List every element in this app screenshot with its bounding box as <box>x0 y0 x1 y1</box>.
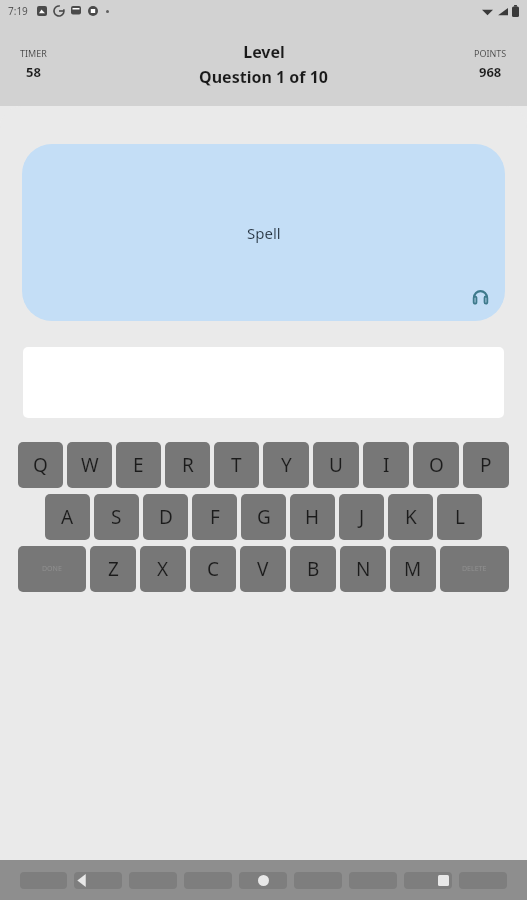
staticText: Y <box>281 452 292 478</box>
staticText: H <box>305 504 320 530</box>
staticText: B <box>307 556 320 582</box>
button[interactable]: DONE <box>18 546 86 592</box>
staticText: O <box>429 452 444 478</box>
button[interactable]: V <box>240 546 286 592</box>
staticText: S <box>111 504 122 530</box>
staticText: C <box>207 556 220 582</box>
button[interactable]: Y <box>263 442 309 488</box>
staticText: A <box>61 504 74 530</box>
button[interactable]: H <box>290 494 335 540</box>
button[interactable]: S <box>94 494 139 540</box>
staticText: U <box>329 452 343 478</box>
staticText: V <box>257 556 269 582</box>
button[interactable]: DELETE <box>440 546 509 592</box>
staticText: T <box>231 452 242 478</box>
button[interactable]: Home <box>175 875 351 886</box>
staticText: DONE <box>42 564 62 574</box>
button[interactable]: C <box>190 546 236 592</box>
button[interactable]: Q <box>18 442 63 488</box>
button[interactable]: G <box>241 494 286 540</box>
button[interactable]: X <box>140 546 186 592</box>
button[interactable]: M <box>390 546 436 592</box>
staticText: Spell <box>247 223 281 243</box>
staticText: TIMER <box>20 47 47 59</box>
button[interactable]: Spell <box>22 144 505 321</box>
button[interactable]: Back <box>0 874 175 887</box>
staticText: J <box>359 504 365 530</box>
button[interactable]: O <box>413 442 459 488</box>
staticText: POINTS <box>474 47 507 59</box>
button[interactable]: B <box>290 546 336 592</box>
staticText: 7:19 <box>8 4 28 18</box>
staticText: 58 <box>26 63 41 81</box>
staticText: L <box>455 504 465 530</box>
staticText: Level <box>243 41 285 63</box>
staticText: D <box>159 504 173 530</box>
staticText: N <box>356 556 371 582</box>
staticText: DELETE <box>462 564 487 574</box>
staticText: 968 <box>479 63 502 81</box>
staticText: M <box>404 556 422 582</box>
staticText: G <box>257 504 271 530</box>
staticText: R <box>182 452 194 478</box>
staticText: F <box>210 504 220 530</box>
staticText: Q <box>33 452 48 478</box>
button[interactable]: U <box>313 442 359 488</box>
button[interactable]: Recent apps <box>351 875 527 886</box>
staticText: P <box>480 452 492 478</box>
button[interactable]: W <box>67 442 112 488</box>
button[interactable]: F <box>192 494 237 540</box>
button[interactable]: N <box>340 546 386 592</box>
staticText: I <box>383 452 390 478</box>
button[interactable]: I <box>363 442 409 488</box>
staticText: W <box>81 452 99 478</box>
button[interactable]: E <box>116 442 161 488</box>
button[interactable]: R <box>165 442 210 488</box>
staticText: K <box>405 504 417 530</box>
button[interactable]: Play audio <box>465 281 495 311</box>
staticText: E <box>133 452 144 478</box>
button[interactable]: J <box>339 494 384 540</box>
button[interactable]: K <box>388 494 433 540</box>
staticText: Z <box>108 556 119 582</box>
button[interactable]: D <box>143 494 188 540</box>
button[interactable]: A <box>45 494 90 540</box>
button[interactable]: Z <box>90 546 136 592</box>
staticText: X <box>157 556 169 582</box>
staticText: Question 1 of 10 <box>199 66 328 88</box>
button[interactable]: L <box>437 494 482 540</box>
button[interactable]: P <box>463 442 509 488</box>
button[interactable]: T <box>214 442 259 488</box>
